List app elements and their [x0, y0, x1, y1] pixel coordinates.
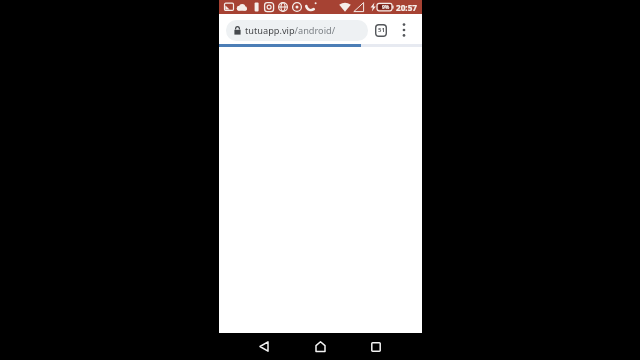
button[interactable]: tutuapp.vip/android/ — [226, 20, 368, 41]
button[interactable] — [252, 335, 276, 358]
button[interactable] — [364, 335, 388, 358]
button[interactable] — [397, 21, 411, 39]
staticText: 9% — [382, 4, 390, 11]
staticText: tutuapp.vip/android/ — [245, 24, 336, 37]
staticText: 51 — [378, 26, 385, 34]
staticText: 20:57 — [396, 2, 418, 13]
button[interactable] — [308, 335, 333, 358]
button[interactable]: 51 — [372, 21, 390, 39]
